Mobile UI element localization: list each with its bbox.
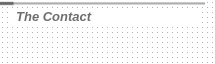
staticText: The Contact <box>16 9 92 24</box>
